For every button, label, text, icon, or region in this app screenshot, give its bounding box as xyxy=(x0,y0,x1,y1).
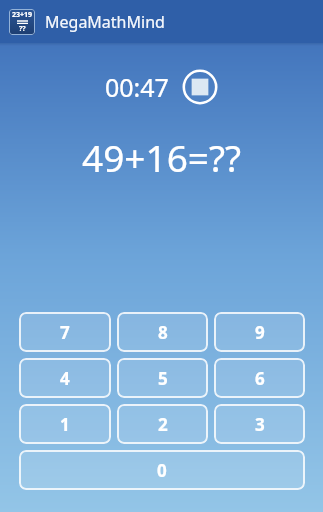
button[interactable]: 7 xyxy=(19,312,111,352)
button[interactable]: 9 xyxy=(214,312,305,352)
staticText: 00:47 xyxy=(105,70,169,104)
staticText: ?? xyxy=(19,24,26,34)
button[interactable]: Stop timer xyxy=(181,68,219,106)
staticText: 7 xyxy=(60,321,70,344)
button[interactable]: 3 xyxy=(214,404,305,444)
button[interactable]: 8 xyxy=(117,312,208,352)
staticText: 4 xyxy=(60,367,70,390)
staticText: 23+19 xyxy=(12,10,33,20)
staticText: 8 xyxy=(158,321,168,344)
button[interactable]: 4 xyxy=(19,358,111,398)
button[interactable]: 0 xyxy=(19,450,305,490)
button[interactable]: 6 xyxy=(214,358,305,398)
staticText: 3 xyxy=(255,413,265,436)
staticText: 49+16=?? xyxy=(82,132,242,182)
staticText: 0 xyxy=(157,459,167,482)
button[interactable]: 5 xyxy=(117,358,208,398)
staticText: 6 xyxy=(255,367,265,390)
staticText: MegaMathMind xyxy=(45,11,165,33)
button[interactable]: 1 xyxy=(19,404,111,444)
staticText: 1 xyxy=(60,413,70,436)
staticText: 2 xyxy=(158,413,168,436)
staticText: 9 xyxy=(255,321,265,344)
button[interactable]: MegaMathMind app icon xyxy=(9,9,35,35)
button[interactable]: 2 xyxy=(117,404,208,444)
staticText: 5 xyxy=(158,367,168,390)
